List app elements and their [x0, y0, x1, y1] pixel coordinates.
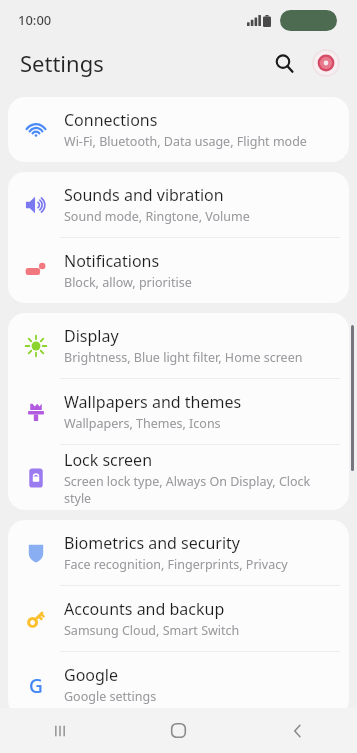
staticText: Accounts and backup [64, 598, 225, 620]
button[interactable]: Display [8, 313, 349, 379]
staticText: Google [64, 664, 119, 686]
staticText: Wi-Fi, Bluetooth, Data usage, Flight mod… [64, 133, 307, 150]
staticText: Screen lock type, Always On Display, Clo… [64, 473, 337, 507]
staticText: Display [64, 325, 119, 347]
staticText: Lock screen [64, 449, 153, 471]
staticText: Connections [64, 109, 158, 131]
staticText: Sounds and vibration [64, 184, 224, 206]
button[interactable]: Lock screen [8, 445, 349, 510]
staticText: Wallpapers and themes [64, 391, 242, 413]
staticText: Face recognition, Fingerprints, Privacy [64, 556, 288, 573]
button[interactable]: Search [265, 44, 303, 82]
button[interactable]: Wallpapers and themes [8, 379, 349, 445]
staticText: 10:00 [18, 11, 52, 29]
staticText: Settings [20, 48, 104, 78]
button[interactable]: Recents [0, 708, 119, 753]
button[interactable]: Accounts and backup [8, 586, 349, 652]
button[interactable]: Profile [309, 46, 343, 80]
button[interactable]: G [8, 652, 349, 717]
staticText: Sound mode, Ringtone, Volume [64, 208, 250, 225]
staticText: Block, allow, prioritise [64, 274, 192, 291]
button[interactable]: Sounds and vibration [8, 172, 349, 238]
staticText: G [29, 673, 43, 697]
staticText: Brightness, Blue light filter, Home scre… [64, 349, 303, 366]
staticText: Wallpapers, Themes, Icons [64, 415, 221, 432]
button[interactable]: Home [119, 708, 238, 753]
staticText: Biometrics and security [64, 532, 241, 554]
staticText: Google settings [64, 688, 157, 705]
button[interactable]: Connections [8, 97, 349, 162]
button[interactable]: Biometrics and security [8, 520, 349, 586]
button[interactable]: Back [238, 708, 357, 753]
button[interactable]: Notifications [8, 238, 349, 303]
staticText: Notifications [64, 250, 160, 272]
staticText: Samsung Cloud, Smart Switch [64, 622, 240, 639]
